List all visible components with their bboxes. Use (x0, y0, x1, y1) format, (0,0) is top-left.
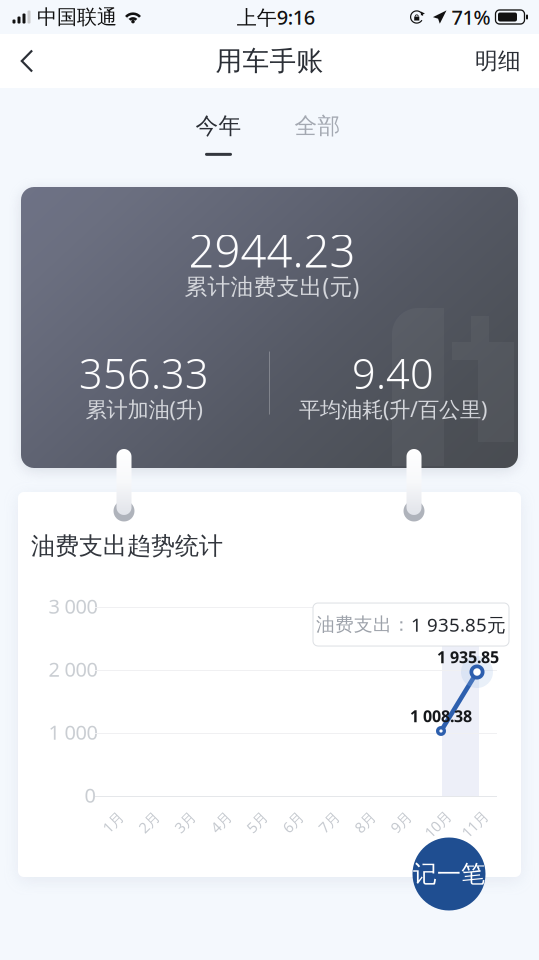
staticText: 356.33 (79, 346, 209, 400)
staticText: 6月 (281, 812, 304, 832)
staticText: 9月 (389, 812, 412, 832)
staticText: 油费支出： (316, 613, 411, 636)
button[interactable]: 返回 (0, 34, 54, 88)
staticText: 3月 (173, 812, 196, 832)
staticText: 5月 (245, 812, 268, 832)
staticText: 今年 (195, 112, 241, 140)
staticText: 1月 (101, 812, 124, 832)
staticText: 平均油耗(升/百公里) (299, 395, 487, 423)
staticText: 8月 (353, 812, 376, 832)
button[interactable]: 记一笔 (412, 837, 485, 910)
button[interactable]: 今年 (169, 100, 268, 166)
staticText: 2月 (137, 812, 160, 832)
staticText: 0 (84, 782, 95, 808)
staticText: 累计加油(升) (85, 395, 202, 423)
staticText: 2 000 (48, 656, 97, 682)
staticText: 1 008.38 (410, 705, 472, 727)
button[interactable]: 明细 (457, 34, 539, 88)
staticText: 全部 (294, 112, 340, 140)
staticText: 9.40 (352, 346, 434, 400)
staticText: 累计油费支出(元) (184, 271, 359, 301)
staticText: 上午9:16 (237, 4, 315, 30)
staticText: 3 000 (48, 593, 97, 619)
staticText: 用车手账 (215, 45, 323, 77)
staticText: 记一笔 (413, 859, 485, 889)
staticText: 明细 (475, 47, 521, 75)
staticText: 11月 (459, 814, 490, 834)
staticText: 71% (451, 4, 490, 30)
button[interactable]: 全部 (268, 100, 367, 166)
staticText: 1 935.85元 (411, 612, 506, 637)
staticText: 10月 (422, 814, 453, 834)
staticText: 1 000 (48, 719, 97, 745)
staticText: 2944.23 (188, 220, 355, 280)
staticText: 4月 (209, 812, 232, 832)
staticText: 1 935.85 (437, 646, 499, 668)
staticText: 油费支出趋势统计 (31, 531, 223, 561)
staticText: 7月 (317, 812, 340, 832)
staticText: 中国联通 (37, 5, 117, 29)
